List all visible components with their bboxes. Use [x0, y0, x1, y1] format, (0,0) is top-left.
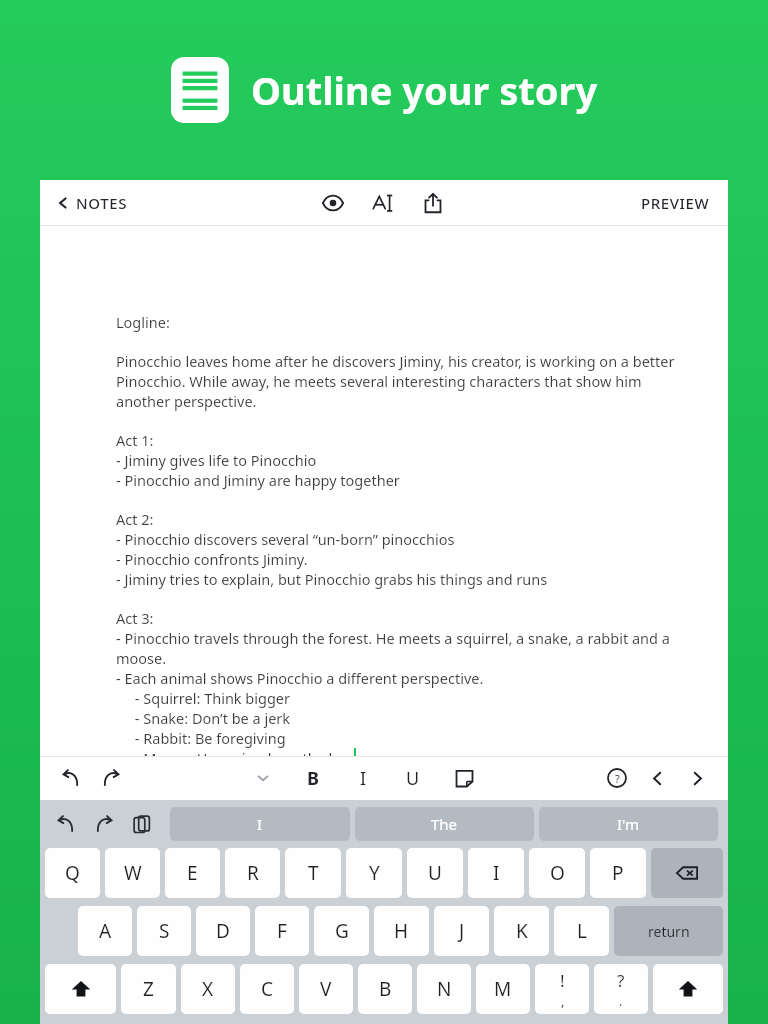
button[interactable]: M	[476, 964, 530, 1014]
button[interactable]: X	[181, 964, 235, 1014]
button[interactable]: F	[255, 906, 309, 956]
button[interactable]: Shift	[653, 964, 723, 1014]
staticText: Act 2:	[116, 509, 154, 529]
button[interactable]: Help	[600, 761, 634, 795]
button[interactable]: R	[225, 848, 280, 898]
staticText: I	[360, 766, 367, 791]
staticText: X	[202, 976, 214, 1002]
staticText: - Squirrel: Think bigger	[116, 688, 291, 708]
button[interactable]: H	[374, 906, 429, 956]
staticText: PREVIEW	[641, 193, 710, 213]
staticText: B	[307, 766, 319, 791]
staticText: - Each animal shows Pinocchio a differen…	[116, 668, 484, 688]
button[interactable]: Clipboard	[126, 808, 158, 840]
button[interactable]: E	[165, 848, 220, 898]
button[interactable]: C	[240, 964, 294, 1014]
button[interactable]: T	[285, 848, 341, 898]
staticText: A	[99, 918, 112, 944]
staticText: E	[187, 860, 198, 886]
staticText: S	[159, 918, 170, 944]
button[interactable]: G	[314, 906, 369, 956]
button[interactable]: V	[299, 964, 353, 1014]
staticText: return	[648, 922, 690, 941]
staticText: - Pinocchio travels through the forest. …	[116, 628, 680, 668]
staticText: B	[379, 976, 392, 1002]
staticText: - Snake: Don’t be a jerk	[116, 708, 291, 728]
button[interactable]: I'm	[539, 807, 718, 841]
staticText: U	[406, 766, 420, 791]
staticText: N	[437, 976, 452, 1002]
staticText: The	[431, 814, 458, 834]
staticText: M	[494, 976, 512, 1002]
staticText: C	[261, 976, 274, 1002]
staticText: U	[428, 860, 442, 886]
button[interactable]: Share	[413, 183, 453, 223]
button[interactable]: A	[78, 906, 132, 956]
button[interactable]: More styles	[248, 763, 278, 793]
button[interactable]: B	[300, 765, 326, 791]
staticText: - Jiminy gives life to Pinocchio	[116, 450, 317, 470]
button[interactable]: W	[105, 848, 160, 898]
button[interactable]: NOTES	[52, 187, 131, 219]
staticText: I'm	[617, 814, 640, 834]
staticText: P	[612, 860, 624, 886]
button[interactable]: PREVIEW	[635, 187, 716, 219]
button[interactable]: Redo	[88, 808, 120, 840]
staticText: - Pinocchio and Jiminy are happy togethe…	[116, 470, 400, 490]
button[interactable]: D	[196, 906, 250, 956]
staticText: - Pinocchio discovers several “un-born” …	[116, 529, 455, 549]
staticText: G	[335, 918, 349, 944]
button[interactable]: L	[554, 906, 609, 956]
button[interactable]: U	[407, 848, 463, 898]
button[interactable]: B	[358, 964, 412, 1014]
staticText: D	[216, 918, 230, 944]
staticText: Z	[143, 976, 154, 1002]
button[interactable]: Z	[121, 964, 176, 1014]
button[interactable]: Note style	[448, 762, 480, 794]
button[interactable]: The	[355, 807, 534, 841]
button[interactable]: P	[590, 848, 646, 898]
staticText: .	[619, 992, 623, 1010]
button[interactable]: ?	[594, 964, 648, 1014]
button[interactable]: return	[614, 906, 723, 956]
button[interactable]: !	[535, 964, 589, 1014]
button[interactable]: Undo	[54, 761, 88, 795]
staticText: ,	[561, 992, 565, 1010]
button[interactable]: U	[400, 765, 426, 791]
button[interactable]: N	[417, 964, 471, 1014]
button[interactable]: J	[434, 906, 489, 956]
staticText: I	[493, 860, 500, 886]
staticText: V	[320, 976, 332, 1002]
button[interactable]: O	[529, 848, 585, 898]
staticText: J	[459, 918, 465, 944]
staticText: Pinocchio leaves home after he discovers…	[116, 351, 680, 411]
staticText: F	[277, 918, 287, 944]
staticText: Y	[369, 860, 380, 886]
button[interactable]: Undo	[50, 808, 82, 840]
staticText: - Pinocchio confronts Jiminy.	[116, 549, 308, 569]
button[interactable]: Text formatting	[363, 183, 403, 223]
button[interactable]: I	[350, 765, 376, 791]
button[interactable]: Q	[45, 848, 100, 898]
staticText: Logline:	[116, 312, 170, 332]
button[interactable]: Next	[680, 761, 714, 795]
button[interactable]: Previous	[640, 761, 674, 795]
button[interactable]: Redo	[94, 761, 128, 795]
button[interactable]: Preview visibility	[313, 183, 353, 223]
button[interactable]: Backspace	[651, 848, 723, 898]
staticText: - Moose: Home is where the hea	[116, 748, 354, 756]
staticText: Outline your story	[251, 64, 598, 116]
button[interactable]: S	[137, 906, 191, 956]
staticText: H	[394, 918, 409, 944]
staticText: I	[257, 814, 263, 834]
staticText: NOTES	[76, 193, 127, 213]
button[interactable]: I	[468, 848, 524, 898]
staticText: L	[577, 918, 587, 944]
staticText: T	[308, 860, 319, 886]
staticText: - Rabbit: Be foregiving	[116, 728, 286, 748]
button[interactable]: K	[494, 906, 549, 956]
button[interactable]: I	[170, 807, 350, 841]
button[interactable]: Y	[346, 848, 402, 898]
button[interactable]: Shift	[45, 964, 116, 1014]
staticText: O	[550, 860, 565, 886]
